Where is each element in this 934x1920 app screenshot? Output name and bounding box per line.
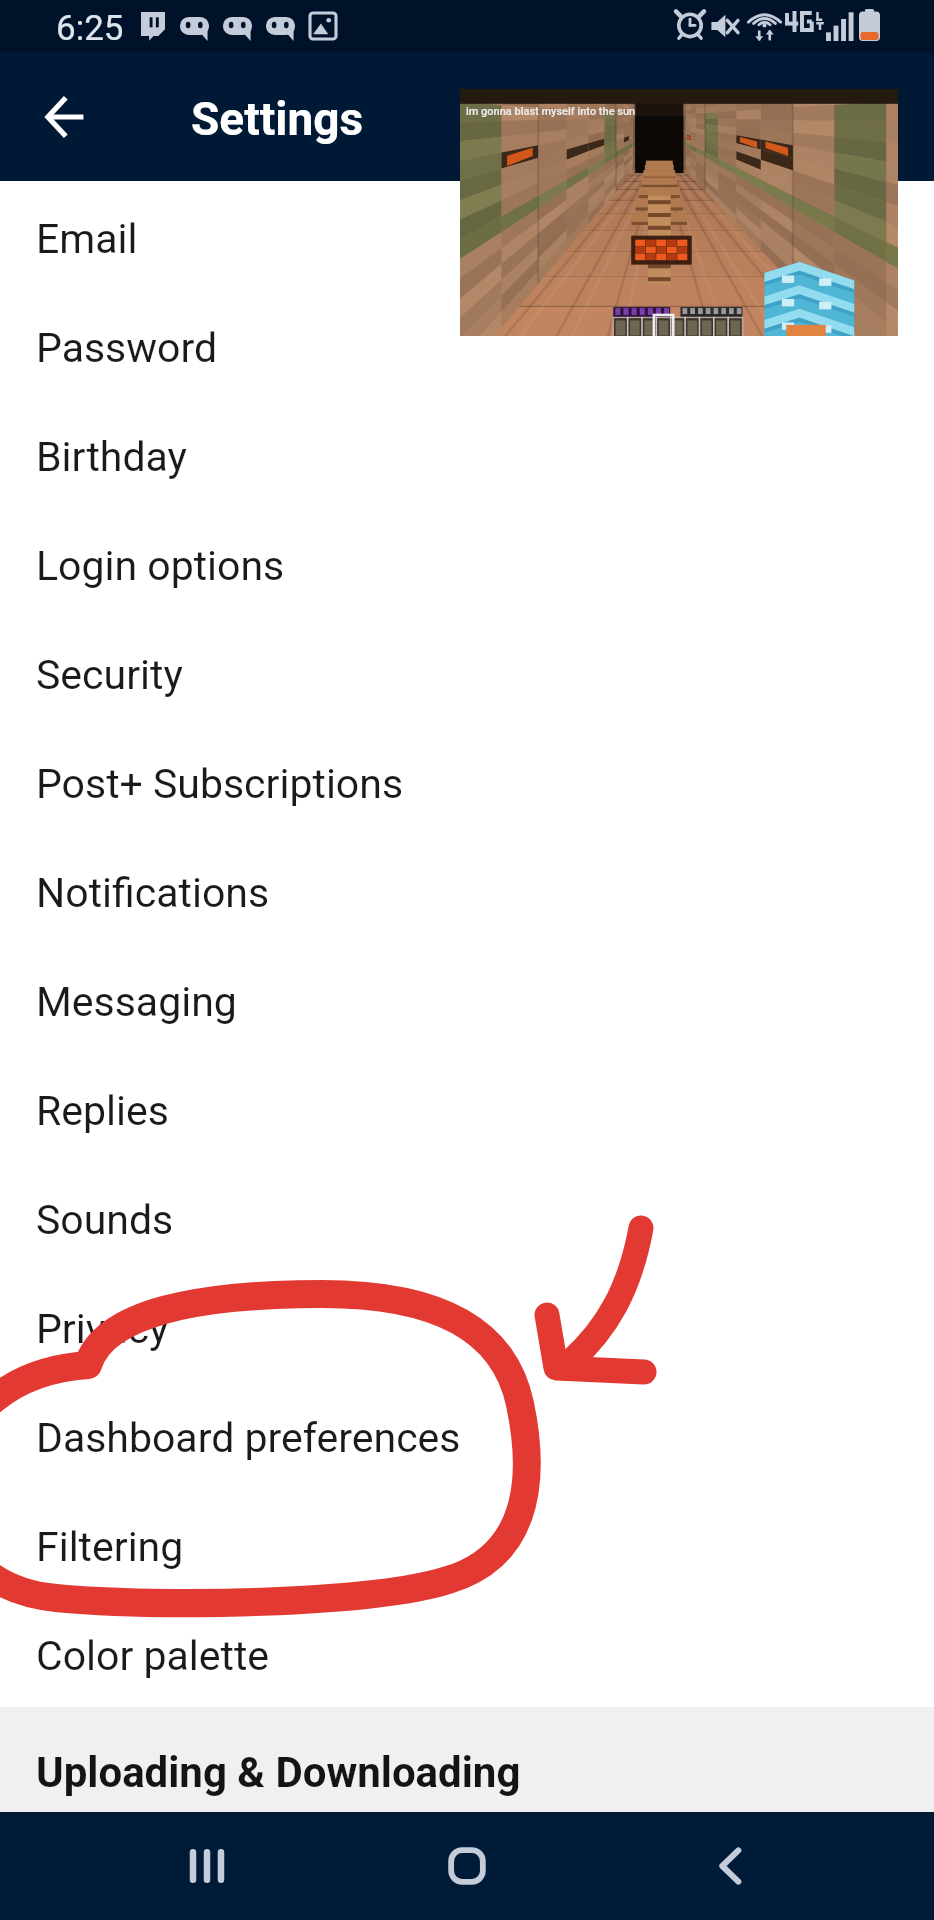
staticText: Login options — [36, 542, 285, 590]
button[interactable]: Uploading & Downloading — [0, 1707, 934, 1812]
button[interactable]: Email — [0, 181, 934, 290]
staticText: Notifications — [36, 869, 270, 917]
staticText: Dashboard preferences — [36, 1414, 461, 1462]
button[interactable]: Color palette — [0, 1598, 934, 1707]
button[interactable]: Security — [0, 617, 934, 726]
staticText: Replies — [36, 1087, 169, 1135]
button[interactable]: Back — [681, 1816, 781, 1916]
staticText: Settings — [191, 92, 364, 146]
staticText: Color palette — [36, 1632, 270, 1680]
button[interactable]: Notifications — [0, 835, 934, 944]
staticText: Messaging — [36, 978, 237, 1026]
button[interactable]: Sounds — [0, 1162, 934, 1271]
staticText: Uploading & Downloading — [36, 1748, 521, 1797]
staticText: Sounds — [36, 1196, 174, 1244]
staticText: Security — [36, 651, 183, 699]
staticText: Birthday — [36, 433, 187, 481]
staticText: Post+ Subscriptions — [36, 760, 404, 808]
button[interactable]: Privacy — [0, 1271, 934, 1380]
button[interactable]: Home — [417, 1816, 517, 1916]
staticText: Email — [36, 215, 138, 263]
button[interactable]: Dashboard preferences — [0, 1380, 934, 1489]
staticText: 6:25 — [56, 8, 124, 49]
staticText: Privacy — [36, 1305, 169, 1353]
button[interactable]: Navigate up — [21, 73, 109, 161]
button[interactable]: Password — [0, 290, 934, 399]
button[interactable]: Replies — [0, 1053, 934, 1162]
button[interactable]: Messaging — [0, 944, 934, 1053]
button[interactable]: Recent apps — [157, 1816, 257, 1916]
button[interactable]: Video player — [460, 89, 898, 336]
staticText: Filtering — [36, 1523, 184, 1571]
staticText: im gonna blast myself into the sun — [466, 105, 636, 118]
button[interactable]: Post+ Subscriptions — [0, 726, 934, 835]
staticText: Password — [36, 324, 218, 372]
button[interactable]: Filtering — [0, 1489, 934, 1598]
button[interactable]: Birthday — [0, 399, 934, 508]
button[interactable]: Login options — [0, 508, 934, 617]
